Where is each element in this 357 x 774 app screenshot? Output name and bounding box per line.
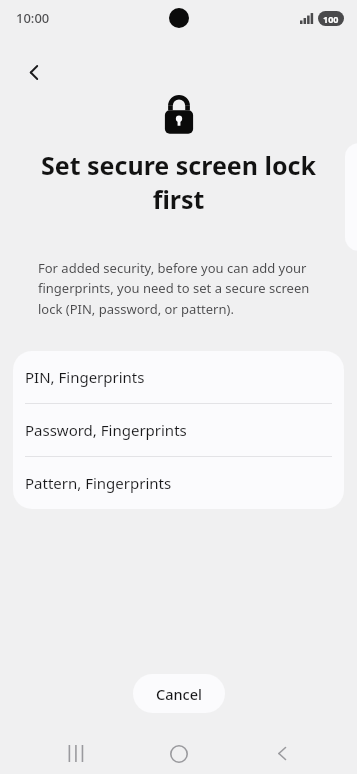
button[interactable]: Cancel — [133, 674, 225, 713]
staticText: For added security, before you can add y… — [38, 259, 317, 318]
staticText: Set secure screen lock first — [30, 148, 327, 216]
staticText: 100 — [323, 13, 339, 25]
staticText: PIN, Fingerprints — [25, 367, 145, 387]
button[interactable]: Recent apps — [47, 733, 103, 774]
staticText: Pattern, Fingerprints — [25, 473, 172, 493]
button[interactable]: Back — [14, 52, 54, 92]
button[interactable]: Password, Fingerprints — [13, 404, 344, 456]
staticText: Password, Fingerprints — [25, 420, 187, 440]
button[interactable]: Pattern, Fingerprints — [13, 457, 344, 509]
button[interactable]: Home — [151, 733, 207, 774]
staticText: 10:00 — [16, 9, 50, 27]
button[interactable]: PIN, Fingerprints — [13, 351, 344, 403]
button[interactable]: Back — [254, 733, 310, 774]
staticText: Cancel — [156, 684, 202, 704]
